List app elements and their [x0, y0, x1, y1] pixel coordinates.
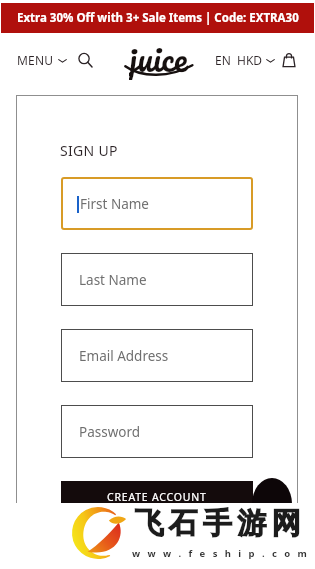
button[interactable]: juice home — [115, 34, 201, 86]
button[interactable]: Shopping bag — [280, 51, 298, 69]
staticText: First Name — [80, 195, 149, 213]
button[interactable]: Extra 30% Off with 3+ Sale Items | Code:… — [1, 3, 314, 33]
staticText: juice — [129, 28, 188, 80]
button[interactable]: Last Name — [61, 253, 253, 306]
staticText: CREATE ACCOUNT — [107, 490, 207, 504]
button[interactable]: Password — [61, 405, 253, 458]
button[interactable]: EN — [215, 52, 231, 68]
button[interactable]: Search — [75, 50, 95, 70]
button[interactable]: Email Address — [61, 329, 253, 382]
staticText: Extra 30% Off with 3+ Sale Items | Code:… — [17, 10, 299, 26]
button[interactable]: MENU — [17, 52, 67, 68]
button[interactable]: HKD — [237, 52, 275, 68]
staticText: Last Name — [79, 271, 147, 289]
button[interactable]: First Name — [61, 177, 253, 230]
staticText: 飞石手游网 — [132, 505, 303, 542]
staticText: w w w . f e s h i p . c o m — [132, 547, 310, 560]
staticText: Email Address — [79, 347, 169, 365]
staticText: Password — [79, 423, 141, 441]
staticText: MENU — [17, 52, 54, 68]
staticText: HKD — [237, 52, 263, 68]
button[interactable]: CREATE ACCOUNT — [61, 481, 253, 525]
staticText: SIGN UP — [60, 141, 118, 160]
